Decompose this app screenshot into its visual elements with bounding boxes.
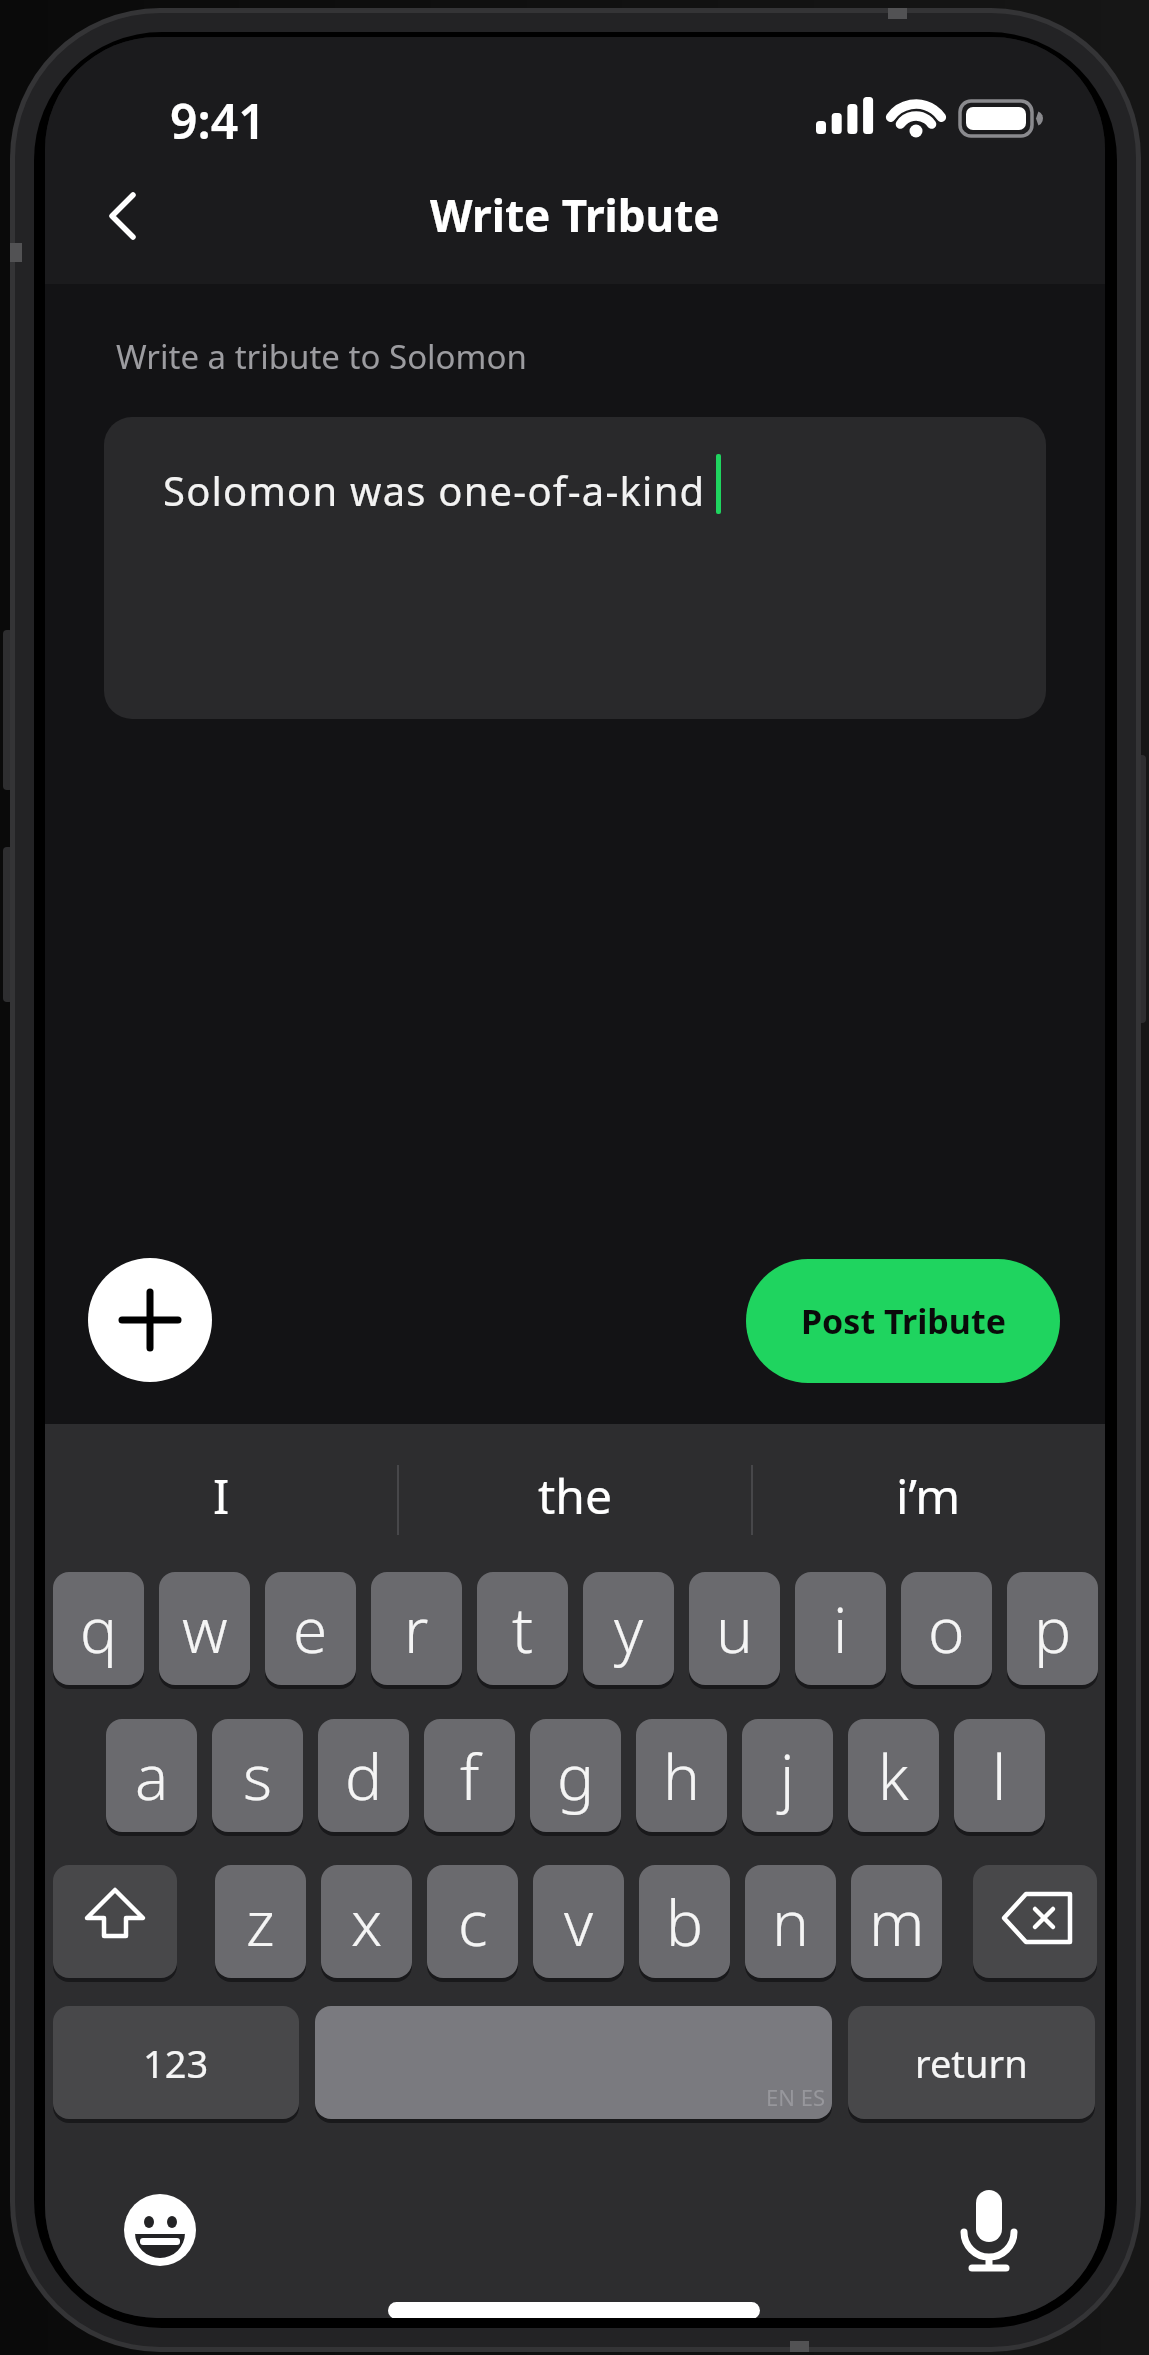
button[interactable]: k xyxy=(848,1719,939,1832)
staticText: k xyxy=(878,1734,909,1818)
staticText: x xyxy=(351,1880,383,1964)
button[interactable]: x xyxy=(321,1865,412,1978)
staticText: w xyxy=(182,1587,228,1671)
button[interactable]: r xyxy=(371,1572,462,1685)
staticText: p xyxy=(1034,1587,1072,1671)
staticText: f xyxy=(460,1734,480,1818)
button[interactable]: s xyxy=(212,1719,303,1832)
button[interactable]: Post Tribute xyxy=(746,1259,1060,1383)
staticText: Write Tribute xyxy=(430,185,720,245)
button[interactable]: b xyxy=(639,1865,730,1978)
staticText: l xyxy=(992,1734,1007,1818)
button[interactable]: t xyxy=(477,1572,568,1685)
button[interactable]: o xyxy=(901,1572,992,1685)
button[interactable]: i xyxy=(795,1572,886,1685)
staticText: the xyxy=(538,1463,613,1528)
button[interactable] xyxy=(105,190,145,242)
button[interactable]: p xyxy=(1007,1572,1098,1685)
button[interactable] xyxy=(315,2006,832,2119)
button[interactable]: d xyxy=(318,1719,409,1832)
staticText: z xyxy=(246,1880,275,1964)
button[interactable]: the xyxy=(398,1439,752,1551)
button[interactable]: a xyxy=(106,1719,197,1832)
staticText: return xyxy=(915,2037,1028,2089)
staticText: I xyxy=(213,1463,230,1528)
button[interactable]: w xyxy=(159,1572,250,1685)
button[interactable] xyxy=(973,1865,1097,1978)
button[interactable] xyxy=(53,1865,177,1978)
staticText: r xyxy=(404,1587,429,1671)
staticText: 9:41 xyxy=(170,88,266,152)
staticText: v xyxy=(564,1880,594,1964)
staticText: b xyxy=(666,1880,704,1964)
staticText: h xyxy=(663,1734,700,1818)
button[interactable] xyxy=(124,2194,196,2266)
button[interactable] xyxy=(88,1258,212,1382)
staticText: o xyxy=(928,1587,965,1671)
button[interactable]: v xyxy=(533,1865,624,1978)
staticText: c xyxy=(458,1880,488,1964)
staticText: d xyxy=(345,1734,383,1818)
staticText: e xyxy=(293,1587,328,1671)
button[interactable]: j xyxy=(742,1719,833,1832)
staticText: y xyxy=(614,1587,644,1671)
button[interactable]: 123 xyxy=(53,2006,299,2119)
staticText: i xyxy=(833,1587,848,1671)
staticText: Post Tribute xyxy=(801,1298,1006,1344)
staticText: i’m xyxy=(896,1463,961,1528)
button[interactable]: z xyxy=(215,1865,306,1978)
staticText: q xyxy=(80,1587,118,1671)
button[interactable]: g xyxy=(530,1719,621,1832)
button[interactable] xyxy=(953,2187,1025,2277)
button[interactable]: i’m xyxy=(752,1439,1105,1551)
button[interactable]: return xyxy=(848,2006,1095,2119)
button[interactable]: q xyxy=(53,1572,144,1685)
button[interactable]: y xyxy=(583,1572,674,1685)
staticText: n xyxy=(772,1880,809,1964)
button[interactable]: e xyxy=(265,1572,356,1685)
button[interactable]: l xyxy=(954,1719,1045,1832)
button[interactable]: f xyxy=(424,1719,515,1832)
button[interactable]: I xyxy=(45,1439,398,1551)
staticText: Solomon was one-of-a-kind xyxy=(163,463,706,517)
button[interactable]: m xyxy=(851,1865,942,1978)
staticText: j xyxy=(780,1734,795,1818)
staticText: Write a tribute to Solomon xyxy=(116,334,527,379)
button[interactable]: h xyxy=(636,1719,727,1832)
staticText: s xyxy=(243,1734,273,1818)
button[interactable] xyxy=(104,417,1046,719)
staticText: m xyxy=(869,1880,925,1964)
button[interactable]: c xyxy=(427,1865,518,1978)
staticText: EN ES xyxy=(766,2082,825,2112)
button[interactable]: u xyxy=(689,1572,780,1685)
staticText: 123 xyxy=(143,2037,209,2089)
staticText: t xyxy=(512,1587,534,1671)
staticText: a xyxy=(135,1734,169,1818)
staticText: u xyxy=(716,1587,753,1671)
button[interactable]: n xyxy=(745,1865,836,1978)
staticText: g xyxy=(557,1734,595,1818)
